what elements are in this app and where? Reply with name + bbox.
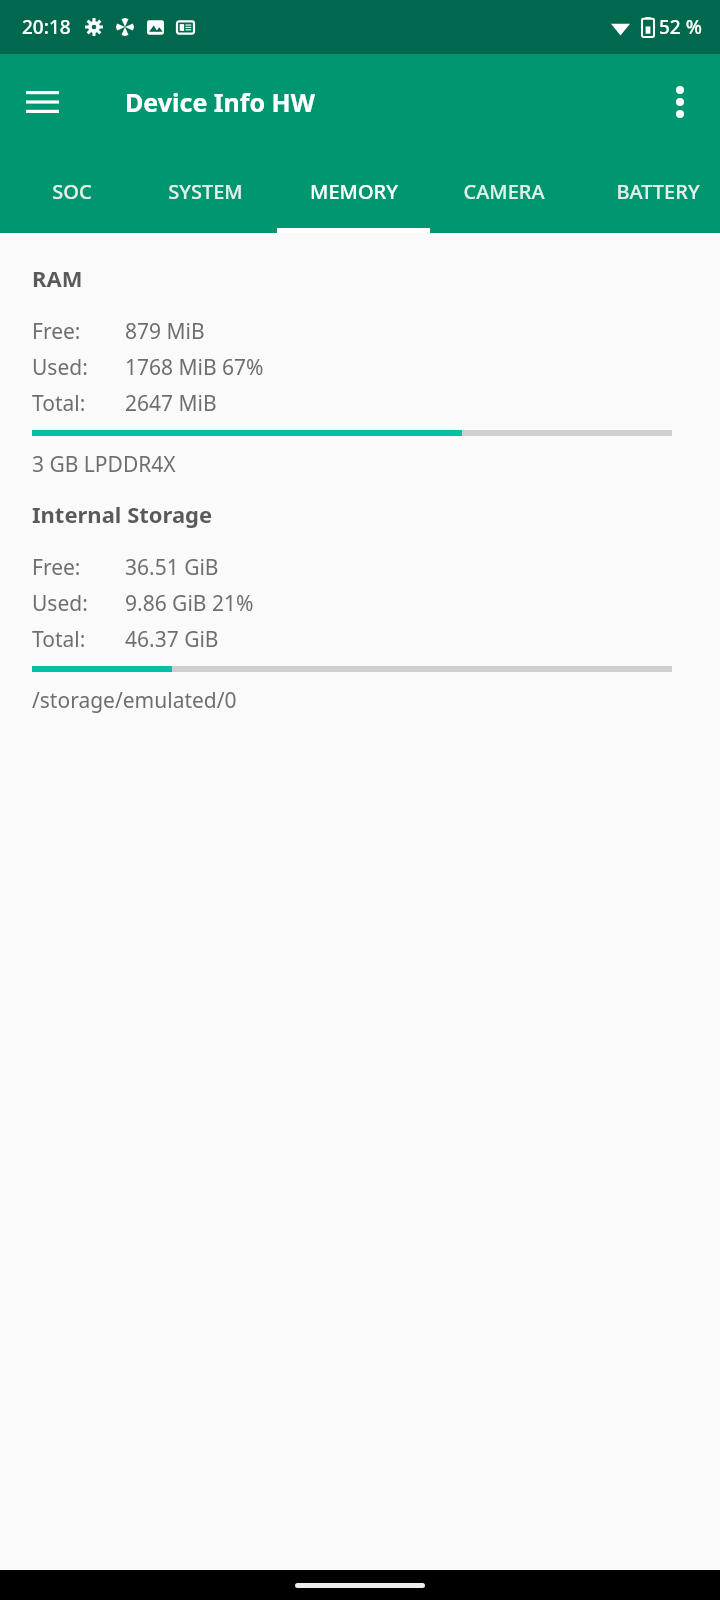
- staticText: Total:: [32, 389, 86, 418]
- staticText: Used:: [32, 353, 88, 382]
- staticText: Free:: [32, 317, 81, 346]
- button[interactable]: More options: [654, 76, 706, 128]
- staticText: Device Info HW: [125, 85, 315, 119]
- staticText: SOC: [52, 178, 92, 205]
- staticText: 879 MiB: [125, 317, 205, 346]
- button[interactable]: SYSTEM: [128, 150, 282, 233]
- staticText: BATTERY: [616, 178, 700, 205]
- staticText: 2647 MiB: [125, 389, 217, 418]
- staticText: 1768 MiB 67%: [125, 353, 264, 382]
- staticText: Internal Storage: [32, 499, 213, 529]
- staticText: /storage/emulated/0: [32, 686, 237, 715]
- button[interactable]: MEMORY: [277, 150, 430, 233]
- staticText: SYSTEM: [168, 178, 243, 205]
- staticText: CAMERA: [463, 178, 545, 205]
- staticText: 46.37 GiB: [125, 625, 219, 654]
- staticText: MEMORY: [310, 178, 398, 205]
- staticText: 9.86 GiB 21%: [125, 589, 254, 618]
- staticText: Used:: [32, 589, 88, 618]
- staticText: Total:: [32, 625, 86, 654]
- staticText: 52 %: [659, 14, 702, 40]
- button[interactable]: SOC: [24, 150, 120, 233]
- staticText: Free:: [32, 553, 81, 582]
- button[interactable]: CAMERA: [430, 150, 577, 233]
- button[interactable]: BATTERY: [583, 150, 720, 233]
- staticText: 3 GB LPDDR4X: [32, 450, 176, 479]
- staticText: 20:18: [22, 14, 71, 40]
- staticText: 36.51 GiB: [125, 553, 219, 582]
- button[interactable]: Open navigation drawer: [14, 74, 70, 130]
- staticText: RAM: [32, 263, 83, 293]
